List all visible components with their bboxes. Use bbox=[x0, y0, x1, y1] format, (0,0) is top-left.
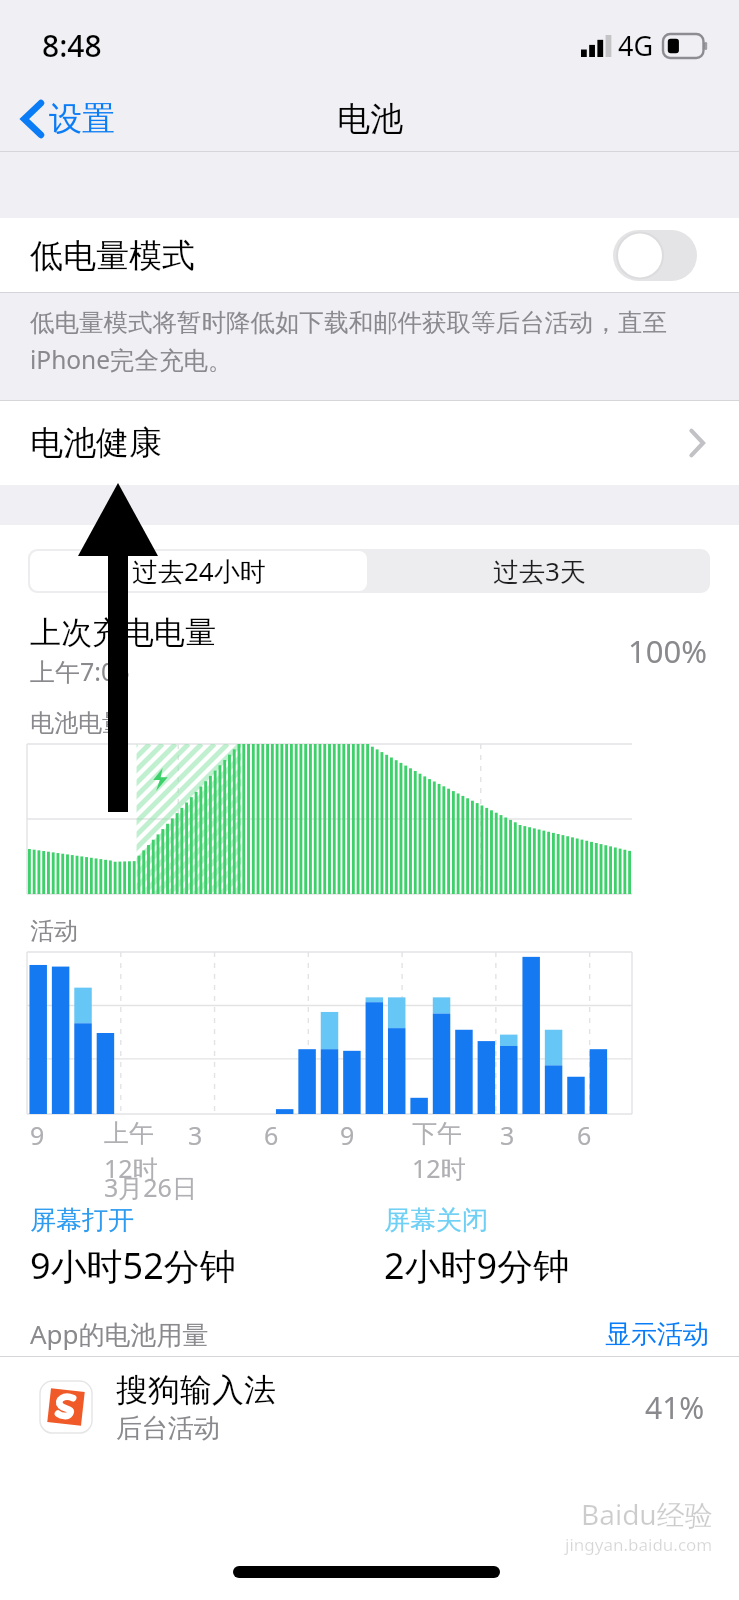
staticText: 8:48 bbox=[42, 25, 102, 66]
staticText: 低电量模式 bbox=[30, 235, 195, 277]
staticText: 9 bbox=[30, 1118, 45, 1152]
staticText: 9小时52分钟 bbox=[30, 1241, 236, 1290]
staticText: 上次充电电量 bbox=[30, 613, 216, 652]
staticText: 12时 bbox=[412, 1151, 466, 1185]
staticText: 41% bbox=[645, 1387, 705, 1428]
staticText: 后台活动 bbox=[116, 1412, 220, 1445]
staticText: 3 bbox=[500, 1118, 515, 1152]
staticText: iPhone完全充电。 bbox=[30, 343, 233, 376]
button[interactable]: 搜狗输入法 bbox=[0, 1357, 739, 1457]
staticText: 4G bbox=[618, 27, 654, 64]
button[interactable]: 过去24小时 bbox=[30, 551, 367, 591]
button[interactable]: 显示活动 bbox=[593, 1312, 739, 1356]
staticText: 2小时9分钟 bbox=[384, 1241, 570, 1290]
staticText: 12时 bbox=[104, 1151, 158, 1185]
staticText: 3 bbox=[188, 1118, 203, 1152]
staticText: 上午7:06 bbox=[30, 654, 130, 688]
staticText: 下午 bbox=[412, 1118, 462, 1149]
staticText: 6 bbox=[264, 1118, 279, 1152]
staticText: 电池电量 bbox=[30, 708, 126, 738]
staticText: 9 bbox=[340, 1118, 355, 1152]
staticText: 活动 bbox=[30, 916, 78, 946]
staticText: 6 bbox=[577, 1118, 592, 1152]
button[interactable]: 过去3天 bbox=[369, 549, 710, 593]
staticText: 电池健康 bbox=[30, 422, 162, 464]
button[interactable]: 设置 bbox=[0, 90, 131, 148]
staticText: 过去3天 bbox=[493, 553, 586, 589]
staticText: 屏幕打开 bbox=[30, 1204, 134, 1237]
staticText: 电池 bbox=[337, 98, 403, 140]
staticText: Baidu经验 bbox=[581, 1495, 713, 1533]
staticText: 100% bbox=[628, 630, 707, 672]
staticText: 搜狗输入法 bbox=[116, 1370, 276, 1410]
staticText: 设置 bbox=[49, 98, 115, 140]
staticText: 屏幕关闭 bbox=[384, 1204, 488, 1237]
staticText: 3月26日 bbox=[104, 1170, 197, 1204]
staticText: 显示活动 bbox=[605, 1318, 709, 1350]
staticText: jingyan.baidu.com bbox=[565, 1533, 713, 1556]
button[interactable]: 低电量模式 bbox=[0, 218, 739, 293]
button[interactable]: 电池健康 bbox=[0, 400, 739, 485]
staticText: 过去24小时 bbox=[132, 553, 266, 589]
staticText: App的电池用量 bbox=[30, 1316, 209, 1352]
staticText: 上午 bbox=[104, 1118, 154, 1149]
staticText: 低电量模式将暂时降低如下载和邮件获取等后台活动，直至 bbox=[30, 307, 667, 338]
